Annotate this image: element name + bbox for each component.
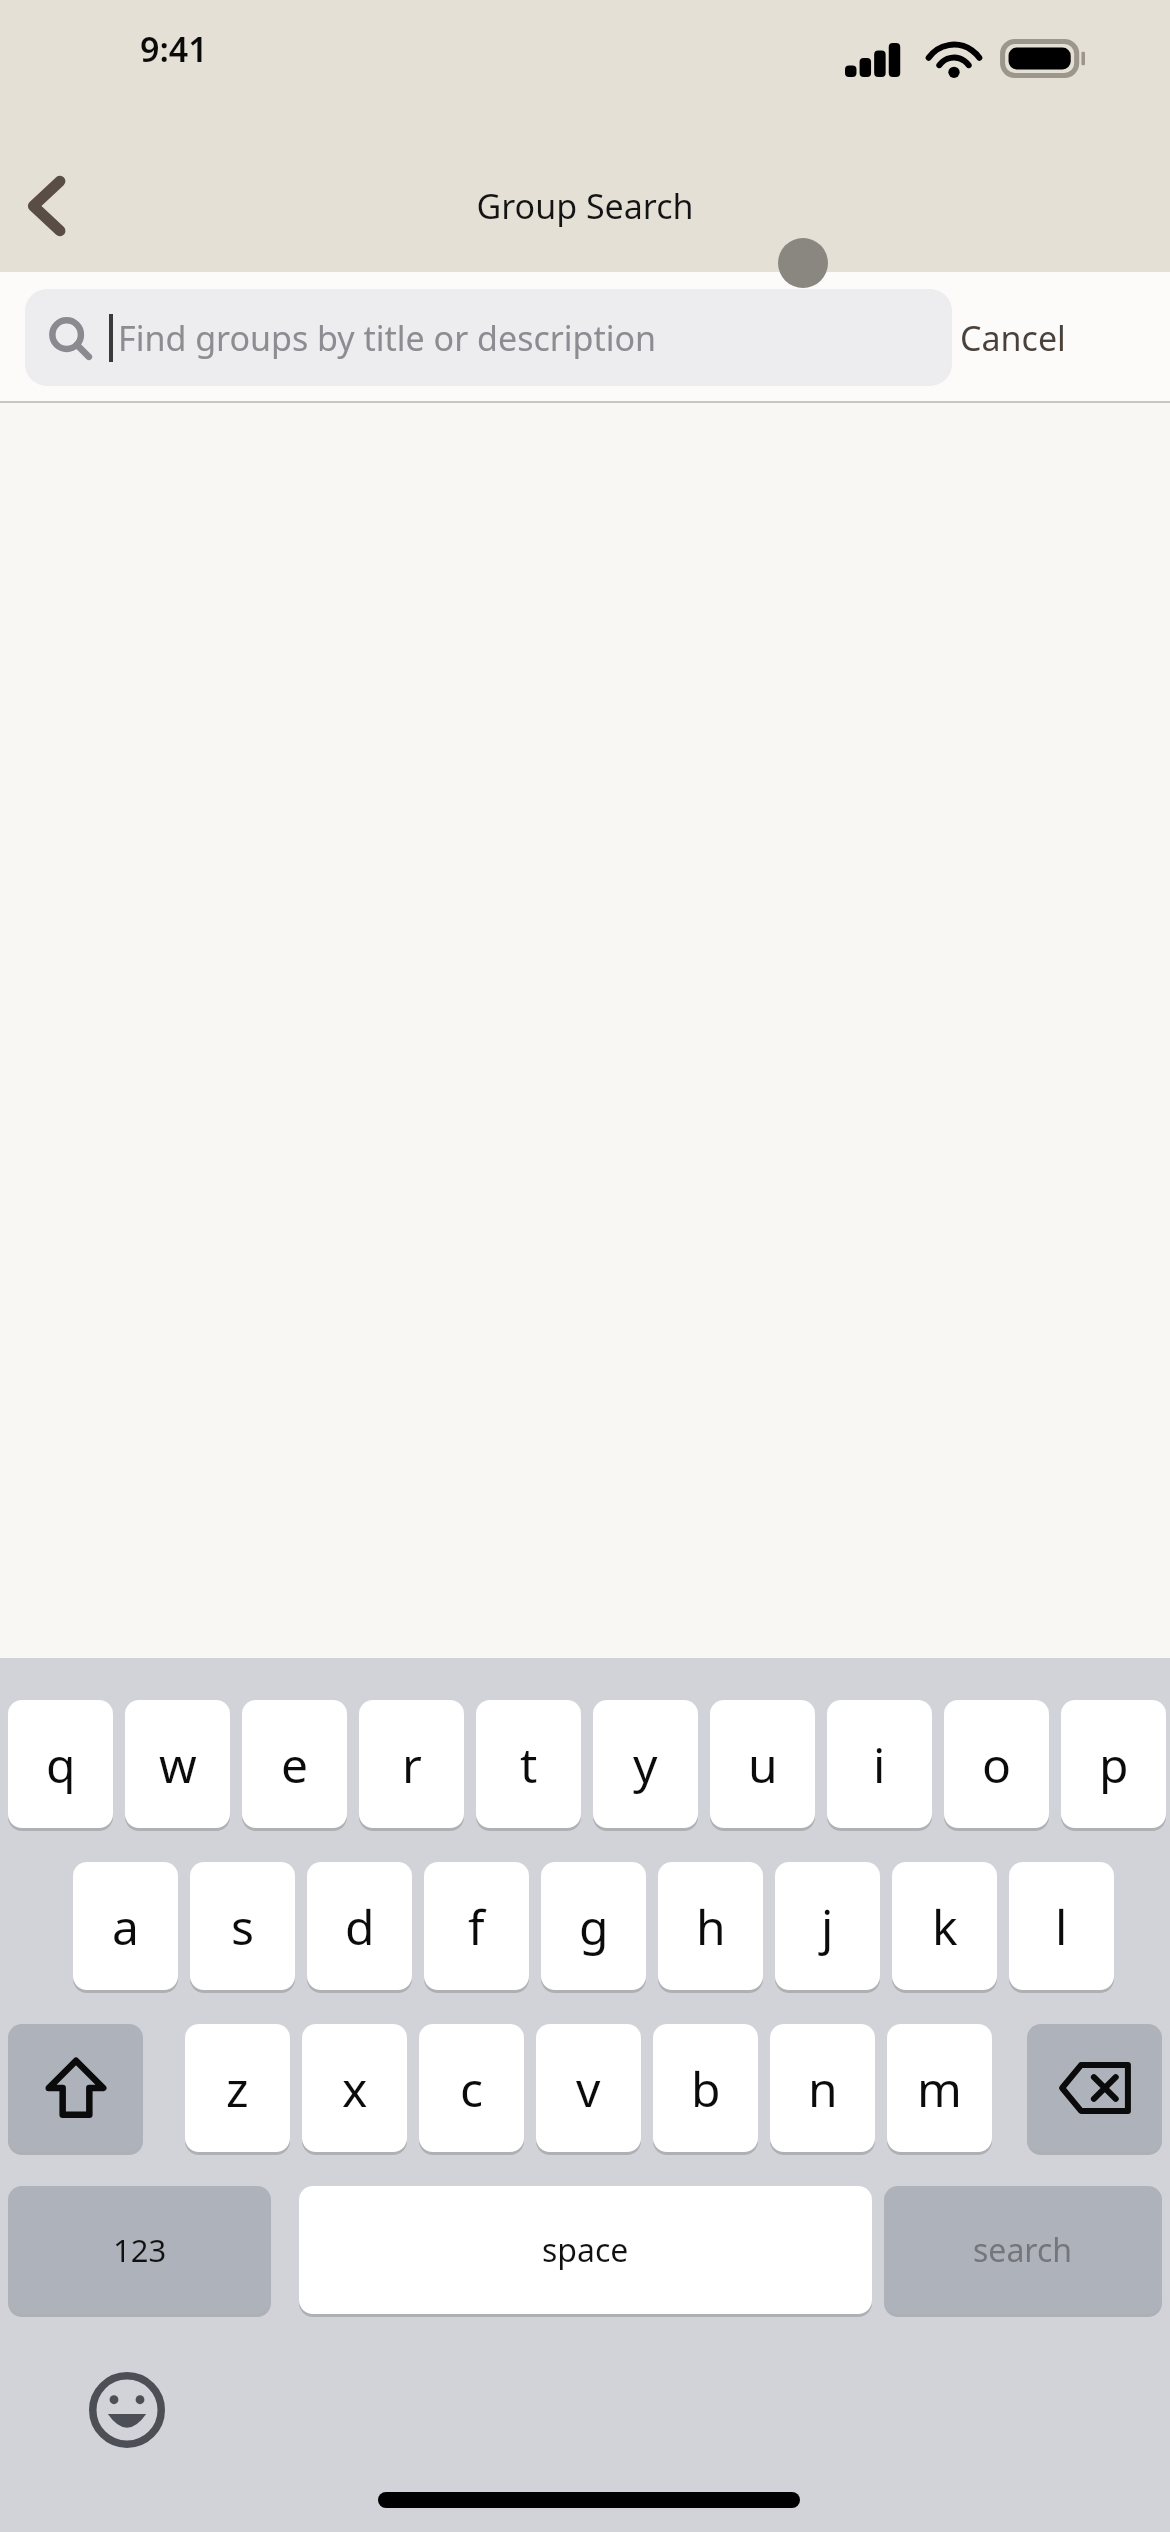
staticText: a bbox=[112, 1894, 139, 1959]
button[interactable]: a bbox=[73, 1862, 178, 1990]
staticText: s bbox=[231, 1894, 254, 1959]
button[interactable]: d bbox=[307, 1862, 412, 1990]
staticText: l bbox=[1055, 1894, 1068, 1959]
staticText: w bbox=[159, 1732, 197, 1797]
button[interactable]: m bbox=[887, 2024, 992, 2152]
button[interactable]: o bbox=[944, 1700, 1049, 1828]
staticText: m bbox=[917, 2056, 962, 2121]
staticText: e bbox=[281, 1732, 309, 1797]
button[interactable]: u bbox=[710, 1700, 815, 1828]
button[interactable]: Find groups by title or description bbox=[25, 289, 952, 386]
staticText: b bbox=[691, 2056, 721, 2121]
button[interactable]: v bbox=[536, 2024, 641, 2152]
button[interactable]: e bbox=[242, 1700, 347, 1828]
button[interactable]: f bbox=[424, 1862, 529, 1990]
button[interactable]: search bbox=[884, 2186, 1162, 2314]
button[interactable]: z bbox=[185, 2024, 290, 2152]
button[interactable]: 123 bbox=[8, 2186, 271, 2314]
button[interactable]: t bbox=[476, 1700, 581, 1828]
staticText: Cancel bbox=[960, 315, 1066, 361]
button[interactable]: Cancel bbox=[960, 289, 1160, 386]
staticText: q bbox=[46, 1732, 76, 1797]
button[interactable]: p bbox=[1061, 1700, 1166, 1828]
staticText: k bbox=[932, 1894, 958, 1959]
button[interactable]: Backspace bbox=[1027, 2024, 1162, 2152]
staticText: u bbox=[748, 1732, 778, 1797]
staticText: f bbox=[468, 1894, 485, 1959]
button[interactable]: l bbox=[1009, 1862, 1114, 1990]
button[interactable]: Shift bbox=[8, 2024, 143, 2152]
button[interactable]: k bbox=[892, 1862, 997, 1990]
staticText: p bbox=[1099, 1732, 1129, 1797]
staticText: o bbox=[982, 1732, 1012, 1797]
staticText: x bbox=[342, 2056, 368, 2121]
button[interactable]: n bbox=[770, 2024, 875, 2152]
staticText: d bbox=[345, 1894, 375, 1959]
staticText: 123 bbox=[113, 2229, 167, 2271]
button[interactable]: h bbox=[658, 1862, 763, 1990]
staticText: i bbox=[873, 1732, 886, 1797]
staticText: y bbox=[633, 1732, 658, 1797]
staticText: h bbox=[696, 1894, 726, 1959]
staticText: j bbox=[821, 1894, 834, 1959]
button[interactable]: w bbox=[125, 1700, 230, 1828]
staticText: search bbox=[973, 2228, 1073, 2272]
button[interactable]: q bbox=[8, 1700, 113, 1828]
button[interactable]: b bbox=[653, 2024, 758, 2152]
staticText: Find groups by title or description bbox=[118, 315, 657, 361]
staticText: v bbox=[576, 2056, 601, 2121]
button[interactable]: g bbox=[541, 1862, 646, 1990]
button[interactable]: y bbox=[593, 1700, 698, 1828]
staticText: 9:41 bbox=[140, 26, 208, 72]
button[interactable]: r bbox=[359, 1700, 464, 1828]
button[interactable]: Back bbox=[8, 160, 86, 252]
button[interactable]: space bbox=[299, 2186, 872, 2314]
button[interactable]: c bbox=[419, 2024, 524, 2152]
button[interactable]: j bbox=[775, 1862, 880, 1990]
button[interactable]: i bbox=[827, 1700, 932, 1828]
staticText: c bbox=[460, 2056, 484, 2121]
staticText: z bbox=[226, 2056, 249, 2121]
staticText: t bbox=[520, 1732, 538, 1797]
button[interactable]: s bbox=[190, 1862, 295, 1990]
staticText: space bbox=[542, 2228, 629, 2272]
staticText: r bbox=[402, 1732, 422, 1797]
staticText: n bbox=[808, 2056, 838, 2121]
button[interactable]: Emoji keyboard bbox=[66, 2352, 188, 2468]
button[interactable]: x bbox=[302, 2024, 407, 2152]
staticText: Group Search bbox=[0, 183, 1170, 229]
staticText: g bbox=[579, 1894, 609, 1959]
